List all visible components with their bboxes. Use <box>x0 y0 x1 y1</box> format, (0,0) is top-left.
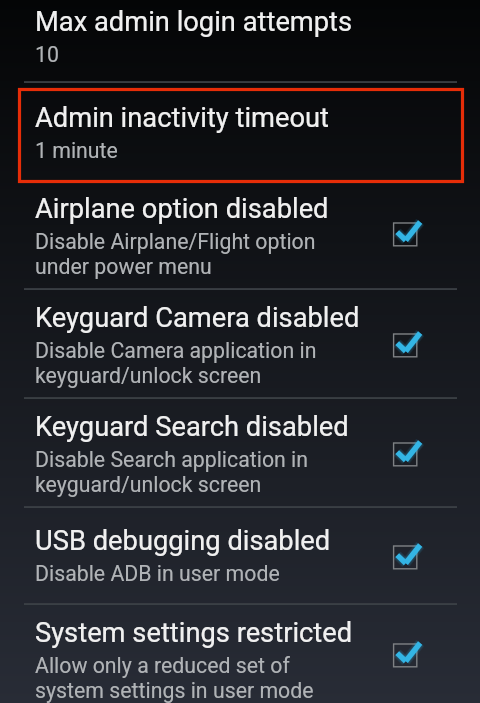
staticText: Keyguard Camera disabled <box>35 302 360 334</box>
button[interactable]: Admin inactivity timeout <box>0 83 480 178</box>
staticText: Disable Airplane/Flight option under pow… <box>35 229 316 279</box>
button[interactable]: Toggle setting <box>383 322 427 366</box>
staticText: System settings restricted <box>35 617 353 649</box>
button[interactable]: Toggle setting <box>383 534 427 578</box>
button[interactable]: System settings restricted <box>0 605 480 703</box>
button[interactable]: Toggle setting <box>383 211 427 255</box>
button[interactable]: Airplane option disabled <box>0 178 480 288</box>
staticText: Allow only a reduced set of system setti… <box>35 653 314 703</box>
staticText: Keyguard Search disabled <box>35 411 349 443</box>
staticText: 10 <box>35 42 59 67</box>
button[interactable]: USB debugging disabled <box>0 508 480 603</box>
staticText: Disable Camera application in keyguard/u… <box>35 338 317 388</box>
button[interactable]: Toggle setting <box>383 431 427 475</box>
button[interactable]: Keyguard Camera disabled <box>0 290 480 397</box>
staticText: Airplane option disabled <box>35 193 329 225</box>
button[interactable]: Keyguard Search disabled <box>0 399 480 506</box>
button[interactable]: Max admin login attempts <box>0 0 480 77</box>
staticText: USB debugging disabled <box>35 525 331 557</box>
staticText: Max admin login attempts <box>35 6 353 38</box>
staticText: Admin inactivity timeout <box>35 102 330 134</box>
staticText: Disable Search application in keyguard/u… <box>35 447 309 497</box>
staticText: Disable ADB in user mode <box>35 561 280 586</box>
button[interactable]: Toggle setting <box>383 632 427 676</box>
staticText: 1 minute <box>35 138 118 163</box>
